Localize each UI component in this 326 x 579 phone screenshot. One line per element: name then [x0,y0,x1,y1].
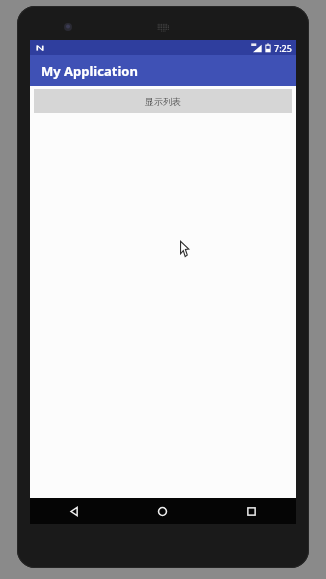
staticText: My Application [41,62,138,80]
button[interactable]: Back [30,498,118,524]
button[interactable]: Home [118,498,207,524]
button[interactable]: 显示列表 [34,89,292,113]
staticText: 显示列表 [145,96,181,107]
staticText: 7:25 [274,42,292,54]
button[interactable]: Recent apps [207,498,296,524]
